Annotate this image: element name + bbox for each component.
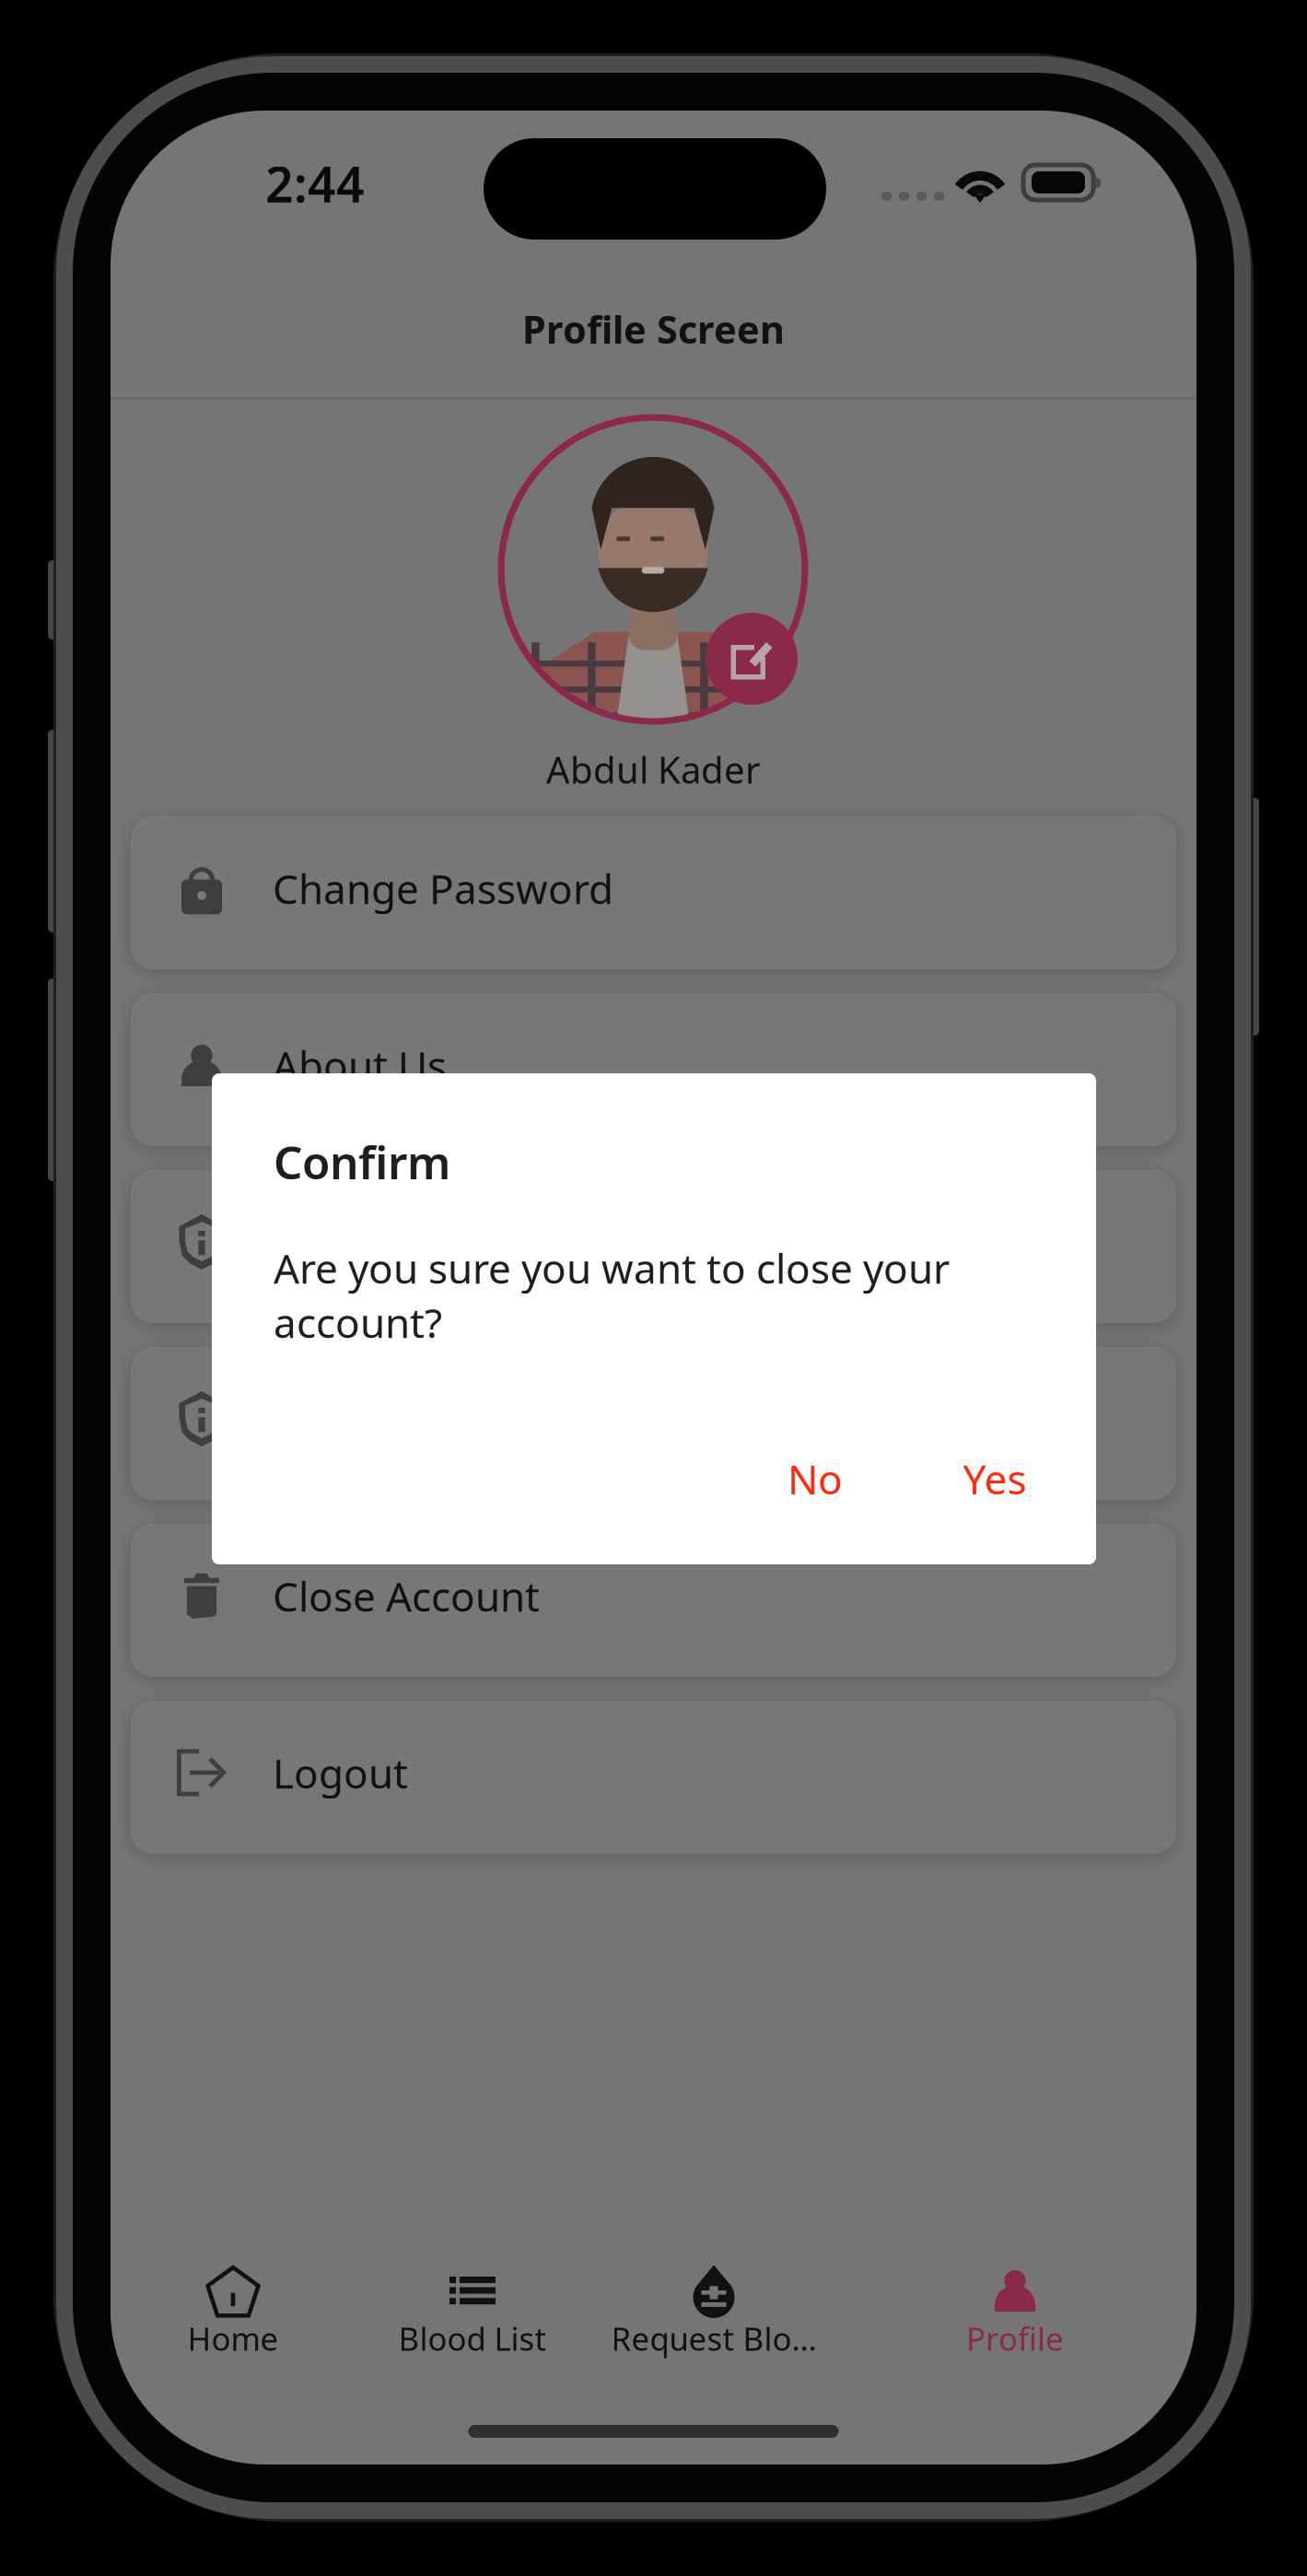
button[interactable]: Blood List [344,2238,601,2358]
staticText: account? [274,1295,442,1349]
button[interactable]: About Us [131,993,1176,1146]
button[interactable]: Request Blo... [585,2238,843,2358]
button[interactable]: Change Password [131,816,1176,969]
staticText: Profile Screen [522,304,785,354]
staticText: Abdul Kader [546,745,761,794]
button[interactable]: Edit profile photo [706,613,798,705]
staticText: Request Blo... [611,2317,817,2359]
staticText: Are you sure you want to close your [274,1241,950,1295]
button[interactable]: Privacy Policy [131,1170,1176,1323]
staticText: Close Account [273,1569,540,1623]
staticText: About Us [273,1038,447,1092]
button[interactable]: No [764,1449,866,1508]
staticText: Blood List [398,2317,547,2359]
staticText: Privacy Policy [273,1215,527,1269]
staticText: Confirm [274,1131,450,1192]
button[interactable]: Logout [131,1701,1176,1854]
button[interactable]: Home [104,2238,362,2358]
staticText: Change Password [273,861,613,915]
staticText: Logout [273,1746,408,1800]
staticText: Profile [966,2317,1064,2359]
button[interactable]: Profile [886,2238,1144,2358]
staticText: Yes [963,1452,1027,1506]
button[interactable]: Terms & Condition [131,1347,1176,1500]
button[interactable]: Yes [939,1449,1050,1508]
button[interactable]: Close Account [131,1524,1176,1677]
staticText: Home [187,2317,279,2359]
staticText: No [788,1452,843,1506]
staticText: 2:44 [265,151,365,216]
